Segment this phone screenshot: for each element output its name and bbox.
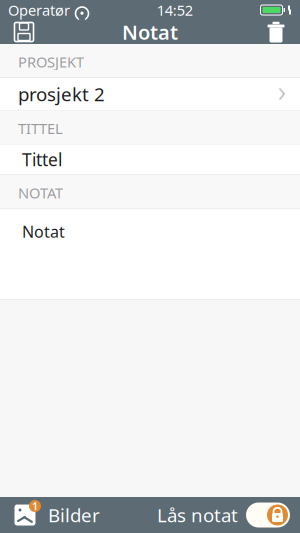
staticText: prosjekt 2 — [18, 82, 105, 106]
button[interactable]: prosjekt 2 — [0, 78, 300, 110]
button[interactable]: Tittel — [0, 144, 300, 174]
button[interactable]: Notat — [0, 209, 300, 299]
staticText: TITTEL — [18, 118, 63, 138]
staticText: Operatør — [8, 0, 70, 20]
staticText: Tittel — [22, 148, 62, 171]
staticText: Notat — [122, 19, 178, 45]
staticText: Lås notat — [157, 503, 238, 527]
button[interactable]: Lås notat — [157, 497, 300, 533]
staticText: Notat — [22, 221, 65, 242]
button[interactable]: Lagre — [2, 17, 46, 47]
staticText: 14:52 — [157, 0, 193, 20]
staticText: 1 — [32, 499, 38, 513]
button[interactable]: Slett — [254, 17, 298, 47]
staticText: PROSJEKT — [18, 52, 84, 71]
staticText: Bilder — [48, 503, 100, 527]
staticText: NOTAT — [18, 183, 63, 202]
button[interactable]: 1 — [0, 497, 108, 533]
